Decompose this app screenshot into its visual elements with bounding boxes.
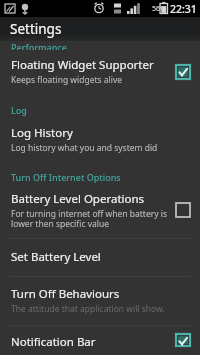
staticText: 56% [152, 4, 166, 14]
staticText: Notification Bar [11, 334, 96, 346]
button[interactable]: Battery Level Operations [0, 183, 200, 238]
staticText: Log [11, 104, 27, 116]
staticText: Turn Off Behaviours [11, 286, 120, 302]
staticText: For turning internet off when battery is… [11, 208, 168, 229]
staticText: Settings [10, 20, 62, 38]
button[interactable]: Notification Bar [176, 334, 190, 346]
button[interactable]: Floating Widget Supporter [176, 65, 190, 79]
staticText: Performance [11, 41, 67, 50]
button[interactable]: Set Battery Level [0, 239, 200, 276]
button[interactable]: Log History [0, 116, 200, 163]
staticText: 22:31 [170, 2, 197, 16]
staticText: Battery Level Operations [11, 191, 145, 207]
staticText: The attitude that application will show. [11, 303, 165, 315]
staticText: Set Battery Level [11, 249, 101, 265]
staticText: Log history what you and system did [11, 142, 158, 154]
staticText: Keeps floating widgets alive [11, 74, 123, 86]
button[interactable]: Turn Off Behaviours [0, 277, 200, 325]
button[interactable]: Battery Level Operations [176, 203, 190, 217]
staticText: Log History [11, 125, 73, 141]
staticText: Floating Widget Supporter [11, 57, 154, 73]
button[interactable]: Floating Widget Supporter [0, 50, 200, 95]
button[interactable]: Notification Bar [0, 326, 200, 355]
staticText: Turn Off Internet Options [11, 171, 121, 183]
